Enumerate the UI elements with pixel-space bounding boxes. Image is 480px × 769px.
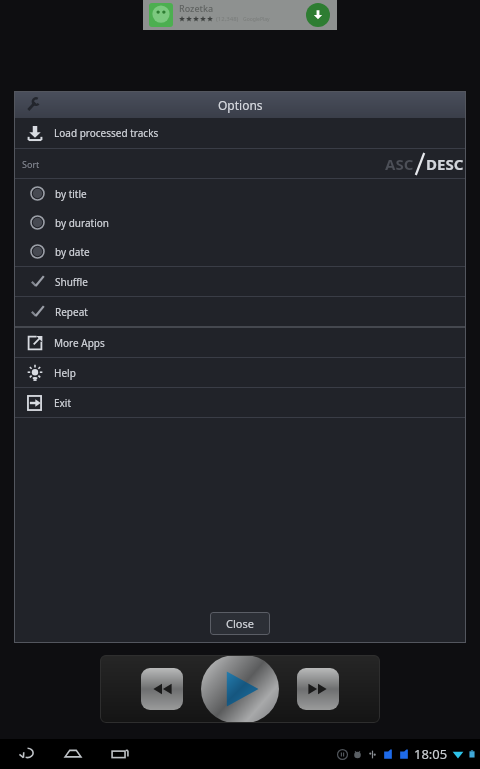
staticText: DESC (426, 154, 464, 174)
staticText: Repeat (55, 305, 88, 319)
button[interactable]: Exit (14, 388, 466, 417)
staticText: More Apps (54, 336, 105, 350)
button[interactable]: Next (297, 668, 339, 710)
button[interactable]: Shuffle (14, 267, 466, 296)
button[interactable]: by title (14, 179, 466, 208)
button[interactable]: Close (210, 612, 270, 635)
button[interactable]: Repeat (14, 297, 466, 326)
staticText: by date (55, 245, 90, 259)
staticText: Shuffle (55, 275, 88, 289)
staticText: Help (54, 366, 76, 380)
button[interactable]: by date (14, 237, 466, 266)
button[interactable]: Sort (14, 149, 466, 178)
button[interactable]: Previous (141, 668, 183, 710)
staticText: ASC (385, 154, 414, 174)
staticText: Sort (22, 158, 40, 170)
staticText: by duration (55, 216, 109, 230)
button[interactable]: Recent apps (101, 739, 139, 769)
button[interactable]: by duration (14, 208, 466, 237)
button[interactable]: Help (14, 358, 466, 387)
button[interactable]: Home (54, 739, 92, 769)
staticText: (12,348) (216, 15, 239, 23)
button[interactable]: More Apps (14, 328, 466, 357)
staticText: Load processed tracks (54, 126, 159, 140)
staticText: Rozetka (179, 2, 214, 14)
staticText: Exit (54, 396, 72, 410)
staticText: 18:05 (414, 745, 448, 763)
button[interactable]: Settings (22, 95, 42, 115)
button[interactable]: Install (306, 3, 330, 27)
staticText: by title (55, 187, 87, 201)
button[interactable]: Back (8, 739, 46, 769)
button[interactable]: Load processed tracks (14, 118, 466, 148)
staticText: Options (218, 97, 263, 113)
button[interactable]: Rozetka (143, 0, 337, 30)
staticText: Close (226, 616, 254, 631)
button[interactable]: Play (201, 655, 279, 723)
staticText: GooglePlay (243, 16, 270, 23)
